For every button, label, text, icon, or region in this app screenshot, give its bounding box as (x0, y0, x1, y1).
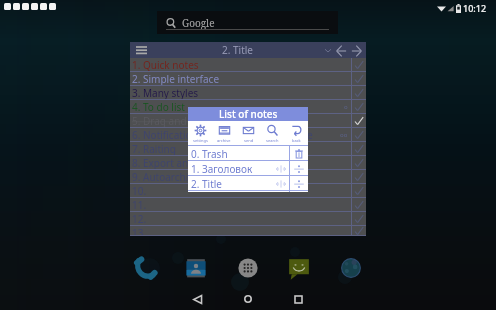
button[interactable]: 1. Quick notes (130, 58, 366, 72)
button[interactable]: 4. To do list (130, 100, 366, 114)
staticText: 4. To do list (132, 100, 185, 114)
button[interactable]: 1. Заголовок (188, 161, 308, 176)
button[interactable]: Home (233, 288, 263, 310)
staticText: oo (340, 131, 348, 139)
staticText: 13. (132, 226, 147, 236)
staticText: 10. (132, 184, 147, 198)
button[interactable]: Phone (132, 255, 158, 281)
staticText: search (266, 138, 279, 143)
button[interactable]: settings (188, 121, 212, 145)
staticText: settings (193, 138, 208, 143)
button[interactable]: 0. Trash (188, 146, 308, 161)
staticText: 2. Simple interface (132, 72, 220, 86)
button[interactable]: Previous note (335, 43, 348, 58)
button[interactable]: 8. Export and import (130, 156, 366, 170)
staticText: 10:12 (463, 2, 487, 14)
staticText: archive (217, 138, 231, 143)
button[interactable]: Recent apps (283, 288, 313, 310)
staticText: o (344, 103, 348, 111)
staticText: send (244, 138, 254, 143)
button[interactable]: More options (324, 43, 332, 57)
staticText: back (292, 138, 301, 143)
button[interactable]: 12. (130, 212, 366, 226)
staticText: 9. Autoarchive (132, 170, 200, 184)
button[interactable]: 11. (130, 198, 366, 212)
button[interactable]: 2. Simple interface (130, 72, 366, 86)
button[interactable]: 3. Many styles (130, 86, 366, 100)
button[interactable]: 9. Autoarchive (130, 170, 366, 184)
staticText: 6. Notifications, reminders and update (132, 128, 313, 142)
staticText: Google (182, 16, 215, 30)
staticText: 2. Title (222, 43, 253, 57)
button[interactable]: 6. Notifications, reminders and update (130, 128, 366, 142)
staticText: 1. Quick notes (132, 58, 199, 72)
button[interactable]: back (284, 121, 308, 145)
button[interactable]: send (236, 121, 260, 145)
button[interactable]: Contacts (183, 255, 209, 281)
staticText: 2. Title (191, 177, 222, 191)
staticText: 11. (132, 198, 147, 212)
staticText: 0. Trash (191, 147, 228, 161)
button[interactable]: Next note (350, 43, 363, 58)
button[interactable]: Google search (157, 11, 338, 34)
button[interactable]: 2. Title (188, 176, 308, 191)
button[interactable]: All apps (235, 255, 261, 281)
staticText: 8. Export and import (132, 156, 229, 170)
staticText: 12. (132, 212, 147, 226)
staticText: 5. Drag and drop (132, 114, 212, 128)
button[interactable]: Browser (338, 255, 364, 281)
button[interactable]: 13. (130, 226, 366, 236)
button[interactable]: Menu (130, 42, 152, 58)
button[interactable]: 5. Drag and drop (130, 114, 366, 128)
button[interactable]: Back (182, 288, 212, 310)
staticText: 3. Many styles (132, 86, 199, 100)
button[interactable]: search (260, 121, 284, 145)
button[interactable]: 7. Raiting (130, 142, 366, 156)
button[interactable]: Messages (286, 255, 312, 281)
staticText: 1. Заголовок (191, 162, 253, 176)
staticText: List of notes (219, 107, 278, 121)
button[interactable]: 10. (130, 184, 366, 198)
button[interactable]: archive (212, 121, 236, 145)
staticText: 7. Raiting (132, 142, 176, 156)
